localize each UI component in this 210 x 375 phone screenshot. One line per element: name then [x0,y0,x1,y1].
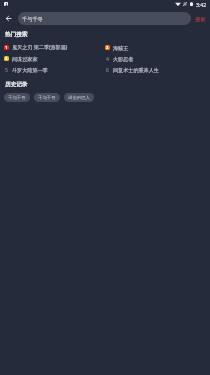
button[interactable]: 3 [4,53,105,64]
staticText: 鬼灭之刃 第二季(游郭篇) [12,44,68,51]
staticText: 历史记录 [5,81,28,88]
staticText: 搜索 [195,16,206,23]
staticText: 3 [5,56,8,61]
button[interactable]: 5 [4,64,105,75]
staticText: 3:42 [196,1,207,8]
staticText: 5 [5,67,8,72]
button[interactable]: 千与千寻 [4,93,30,102]
staticText: 1 [5,45,8,50]
button[interactable]: 进击的巨人 [64,93,94,102]
staticText: 进击的巨人 [68,95,90,101]
button[interactable]: 6 [105,64,210,75]
staticText: 千与千寻 [38,95,56,101]
staticText: 斗罗大陆第一季 [12,67,48,73]
staticText: 2 [106,45,109,50]
staticText: 火影忍者 [113,56,134,62]
button[interactable]: 千与千寻 [34,93,60,102]
button[interactable]: 4 [105,53,210,64]
button[interactable]: Back [2,12,15,25]
button[interactable]: 千与千寻 [18,12,191,25]
staticText: 千与千寻 [22,16,43,23]
staticText: 4 [106,56,109,61]
staticText: 千与千寻 [8,95,26,101]
button[interactable]: 2 [105,42,210,53]
staticText: 热门搜索 [5,31,28,38]
button[interactable]: 1 [4,42,105,53]
staticText: 间谍过家家 [12,56,38,62]
staticText: 回复术士的重来人生 [113,67,159,73]
button[interactable]: 搜索 [190,13,210,26]
staticText: 海贼王 [113,45,129,51]
staticText: 6 [106,67,109,72]
